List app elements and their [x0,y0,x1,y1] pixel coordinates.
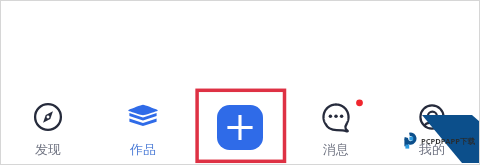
button[interactable]: 发现 [11,99,85,161]
staticText: 我的 [395,141,469,157]
button[interactable]: Create new [217,105,263,150]
staticText: 发现 [11,141,85,157]
staticText: PCPDPAPP下载 [421,136,476,146]
button[interactable]: 消息 [299,99,373,161]
button[interactable]: 我的 [395,99,469,161]
button[interactable]: 作品 [106,99,180,161]
staticText: 消息 [299,141,373,157]
staticText: 作品 [106,141,180,157]
